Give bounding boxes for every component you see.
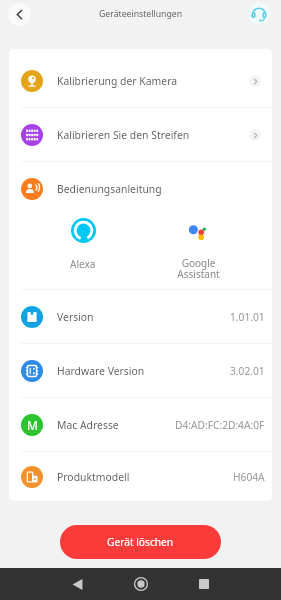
button[interactable]: Google Assistant: [166, 216, 230, 281]
button[interactable]: Alexa: [51, 216, 115, 271]
staticText: 3.02.01: [230, 364, 265, 378]
button[interactable]: Support: [248, 3, 270, 25]
button[interactable]: Kalibrieren Sie den Streifen: [9, 108, 272, 161]
staticText: Gerät löschen: [107, 535, 174, 549]
staticText: Produktmodell: [57, 470, 130, 484]
staticText: Mac Adresse: [57, 418, 119, 432]
button[interactable]: Version: [9, 290, 272, 343]
staticText: Bedienungsanleitung: [57, 182, 162, 196]
staticText: Version: [57, 310, 94, 324]
staticText: Geräteeinstellungen: [99, 8, 183, 20]
button[interactable]: Produktmodell: [9, 452, 272, 501]
staticText: 1.01.01: [230, 310, 265, 324]
staticText: Hardware Version: [57, 364, 145, 378]
button[interactable]: Recents: [193, 573, 215, 595]
button[interactable]: Home: [130, 573, 152, 595]
button[interactable]: Kalibrierung der Kamera: [9, 54, 272, 107]
button[interactable]: M: [9, 398, 272, 451]
button[interactable]: Back: [8, 3, 31, 26]
staticText: Google Assistant: [177, 256, 220, 281]
staticText: D4:AD:FC:2D:4A:0F: [175, 418, 265, 432]
staticText: H604A: [233, 470, 265, 484]
staticText: Kalibrieren Sie den Streifen: [57, 128, 190, 142]
button[interactable]: Bedienungsanleitung: [9, 162, 272, 216]
staticText: Alexa: [70, 257, 96, 271]
staticText: M: [27, 417, 38, 433]
button[interactable]: Hardware Version: [9, 344, 272, 397]
staticText: Kalibrierung der Kamera: [57, 74, 178, 88]
button[interactable]: Back: [66, 573, 88, 595]
button[interactable]: Gerät löschen: [60, 525, 221, 559]
